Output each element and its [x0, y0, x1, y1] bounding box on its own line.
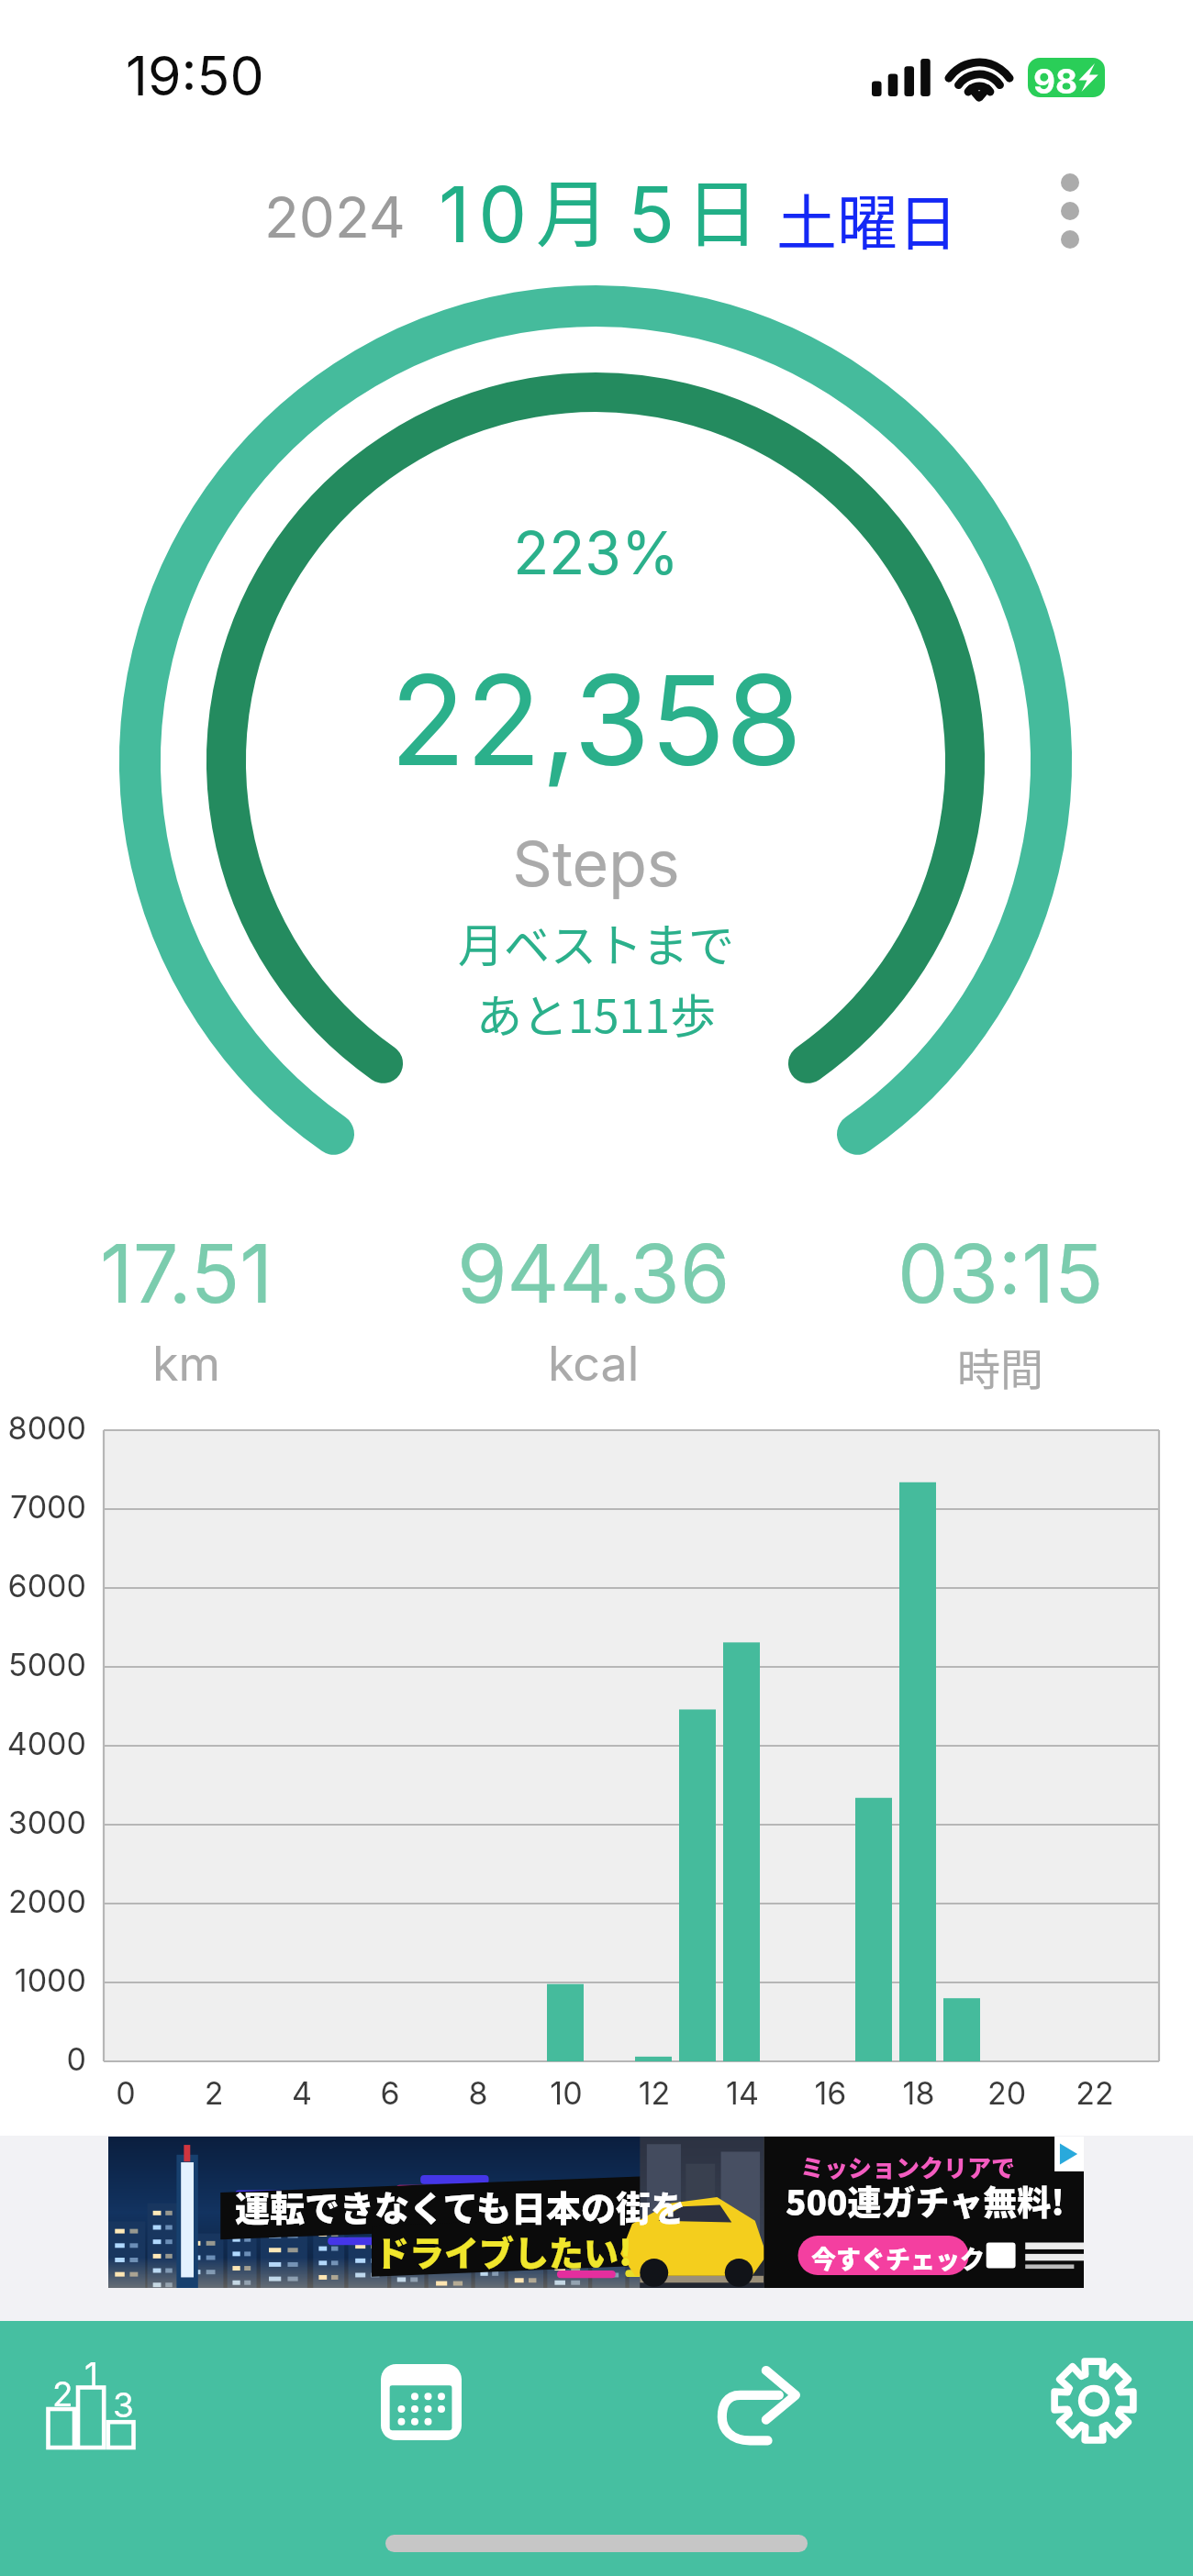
button[interactable]: More options — [1028, 156, 1112, 266]
staticText: 03:15 — [898, 1225, 1104, 1322]
staticText: 今すぐチェック — [811, 2240, 985, 2276]
staticText: 944.36 — [457, 1225, 730, 1322]
staticText: 22,358 — [390, 645, 802, 794]
staticText: 2 — [52, 2373, 73, 2415]
staticText: 16 — [785, 2074, 876, 2112]
button[interactable]: Share — [675, 2324, 841, 2489]
button[interactable]: 944.36 — [394, 1225, 794, 1393]
staticText: 22 — [1049, 2074, 1141, 2112]
staticText: あと1511歩 — [476, 980, 716, 1046]
staticText: km — [152, 1335, 221, 1393]
staticText: 0 — [0, 2040, 86, 2078]
button[interactable]: Ranking — [7, 2322, 173, 2487]
staticText: 運転できなくても日本の街を — [235, 2181, 686, 2231]
staticText: 2024 — [264, 183, 406, 251]
staticText: Steps — [512, 826, 680, 901]
staticText: 17.51 — [100, 1225, 273, 1322]
staticText: 3 — [113, 2384, 134, 2426]
button[interactable]: Settings — [1011, 2318, 1176, 2483]
staticText: 土曜日 — [776, 174, 958, 262]
staticText: 0 — [80, 2074, 172, 2112]
staticText: 日 — [686, 155, 759, 261]
staticText: 1 — [84, 2354, 99, 2395]
staticText: 8 — [432, 2074, 524, 2112]
staticText: 10 — [520, 2074, 612, 2112]
staticText: ミッションクリアで — [800, 2149, 1016, 2184]
staticText: 3000 — [0, 1804, 86, 1841]
staticText: 2000 — [0, 1882, 86, 1920]
staticText: 6 — [344, 2074, 436, 2112]
button[interactable]: 03:15 — [800, 1225, 1193, 1397]
staticText: 7000 — [0, 1488, 86, 1526]
button[interactable]: 17.51 — [0, 1225, 386, 1393]
staticText: 8000 — [0, 1409, 86, 1447]
staticText: 月ベストまで — [458, 909, 734, 975]
staticText: 5000 — [0, 1646, 86, 1683]
staticText: 19:50 — [126, 43, 264, 108]
button[interactable]: Calendar — [339, 2319, 504, 2484]
staticText: 500連ガチャ無料! — [786, 2176, 1065, 2226]
staticText: kcal — [548, 1335, 640, 1393]
staticText: 223% — [513, 517, 679, 588]
staticText: 98 — [1033, 61, 1078, 97]
staticText: 2 — [168, 2074, 260, 2112]
staticText: 6000 — [0, 1567, 86, 1604]
staticText: 時間 — [957, 1335, 1043, 1397]
staticText: ドライブしたい! — [374, 2226, 633, 2276]
staticText: 20 — [961, 2074, 1053, 2112]
staticText: 1000 — [0, 1961, 86, 1999]
staticText: 月 — [536, 155, 609, 261]
staticText: 10 — [439, 168, 536, 261]
staticText: 18 — [873, 2074, 964, 2112]
staticText: 12 — [608, 2074, 700, 2112]
staticText: 4 — [256, 2074, 348, 2112]
staticText: 4000 — [0, 1725, 86, 1762]
staticText: 14 — [697, 2074, 788, 2112]
button[interactable]: Advertisement — [108, 2137, 1084, 2288]
staticText: 5 — [628, 168, 675, 261]
